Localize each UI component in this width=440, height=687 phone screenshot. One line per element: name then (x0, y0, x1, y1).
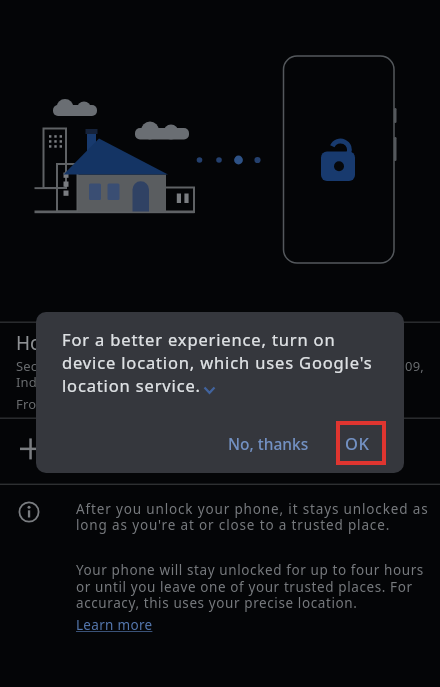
staticText: Sector 109, Gurgaon, Haryana (16, 357, 206, 375)
staticText: Home (16, 330, 71, 356)
button[interactable]: No, thanks (216, 424, 320, 462)
staticText: Your phone will stay unlocked for up to … (76, 561, 424, 612)
staticText: India (16, 373, 49, 391)
staticText: OK (345, 432, 370, 454)
staticText: No, thanks (228, 433, 309, 454)
staticText: For a better experience, turn on device … (62, 328, 373, 397)
button[interactable]: OK (328, 424, 386, 462)
staticText: After you unlock your phone, it stays un… (76, 500, 429, 534)
button[interactable] (0, 419, 440, 483)
button[interactable]: Learn more (76, 616, 153, 634)
button[interactable] (0, 323, 440, 417)
staticText: 09, (405, 357, 424, 375)
staticText: From your Google Account (16, 395, 185, 413)
